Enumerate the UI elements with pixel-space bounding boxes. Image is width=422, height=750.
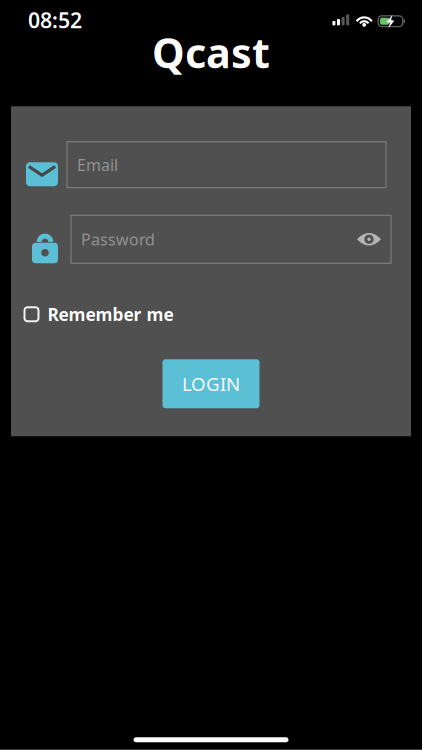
button[interactable]: LOGIN — [162, 359, 259, 408]
staticText: Remember me — [47, 303, 173, 326]
button[interactable]: Remember me — [24, 303, 173, 326]
staticText: 08:52 — [28, 6, 82, 34]
staticText: Password — [81, 229, 155, 250]
button[interactable]: Password — [71, 215, 391, 263]
staticText: LOGIN — [182, 371, 240, 396]
button[interactable]: Email — [67, 142, 386, 188]
staticText: Qcast — [152, 25, 270, 80]
staticText: Email — [77, 154, 118, 175]
